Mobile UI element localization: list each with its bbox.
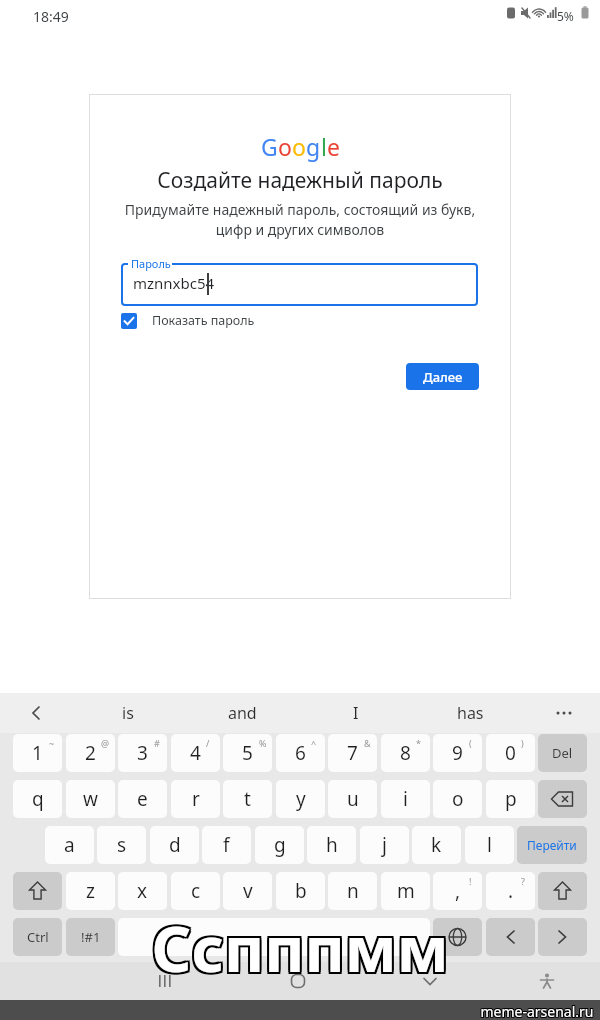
staticText: Сспппмм <box>2 904 600 988</box>
staticText: Создайте надежный пароль <box>89 166 511 195</box>
button[interactable]: 9 <box>433 734 482 772</box>
button[interactable]: , <box>433 872 482 910</box>
button[interactable]: v <box>223 872 272 910</box>
button[interactable]: 7 <box>328 734 377 772</box>
button[interactable]: 4 <box>171 734 220 772</box>
staticText: u <box>347 786 359 812</box>
button[interactable]: w <box>66 780 115 818</box>
button[interactable]: x <box>118 872 167 910</box>
button[interactable]: o <box>433 780 482 818</box>
button[interactable]: Accessibility <box>523 962 571 1000</box>
staticText: 18:49 <box>33 7 69 26</box>
staticText: 7 <box>347 740 358 766</box>
button[interactable]: t <box>223 780 272 818</box>
button[interactable]: 5 <box>223 734 272 772</box>
button[interactable]: Hide keyboard <box>406 962 454 1000</box>
button[interactable]: Previous <box>486 918 535 956</box>
staticText: I <box>353 702 359 724</box>
button[interactable]: c <box>171 872 220 910</box>
button[interactable]: s <box>97 826 146 864</box>
staticText: . <box>508 878 514 904</box>
staticText: Del <box>552 744 573 762</box>
staticText: t <box>244 786 251 812</box>
staticText: Сспппмм <box>0 906 598 990</box>
button[interactable]: I <box>306 695 406 731</box>
button[interactable]: 3 <box>118 734 167 772</box>
button[interactable]: r <box>171 780 220 818</box>
staticText: b <box>295 878 307 904</box>
button[interactable]: Recents <box>141 962 189 1000</box>
button[interactable]: d <box>150 826 199 864</box>
staticText: meme-arsenal.ru <box>477 1001 599 1020</box>
staticText: 5% <box>557 8 574 24</box>
button[interactable]: m <box>381 872 430 910</box>
button[interactable]: Next <box>538 918 587 956</box>
button[interactable]: More options <box>546 695 582 731</box>
staticText: meme-arsenal.ru <box>476 1002 598 1020</box>
button[interactable]: Change language <box>433 918 482 956</box>
button[interactable]: 8 <box>381 734 430 772</box>
button[interactable] <box>121 263 478 306</box>
button[interactable]: Back <box>18 695 54 731</box>
staticText: c <box>191 878 201 904</box>
staticText: e <box>327 131 340 162</box>
button[interactable]: Показать пароль <box>121 311 301 330</box>
button[interactable]: f <box>202 826 251 864</box>
button[interactable]: Ctrl <box>13 918 62 956</box>
button[interactable]: Del <box>538 734 587 772</box>
button[interactable]: b <box>276 872 325 910</box>
button[interactable]: Перейти <box>517 826 587 864</box>
staticText: l <box>487 832 492 858</box>
staticText: k <box>431 832 442 858</box>
button[interactable]: Backspace <box>538 780 587 818</box>
button[interactable]: 0 <box>486 734 535 772</box>
button[interactable]: j <box>360 826 409 864</box>
staticText: ( <box>469 737 472 749</box>
button[interactable]: z <box>66 872 115 910</box>
staticText: ) <box>521 737 524 749</box>
staticText: d <box>169 832 181 858</box>
staticText: m <box>397 878 415 904</box>
button[interactable]: has <box>420 695 520 731</box>
staticText: Сспппмм <box>0 906 600 990</box>
staticText: ^ <box>311 737 317 749</box>
staticText: e <box>137 786 148 812</box>
button[interactable]: and <box>192 695 292 731</box>
button[interactable]: !#1 <box>66 918 115 956</box>
button[interactable]: n <box>328 872 377 910</box>
button[interactable]: 6 <box>276 734 325 772</box>
button[interactable]: p <box>486 780 535 818</box>
button[interactable]: k <box>412 826 461 864</box>
button[interactable]: is <box>78 695 178 731</box>
staticText: s <box>117 832 127 858</box>
staticText: meme-arsenal.ru <box>476 1001 598 1020</box>
staticText: and <box>228 702 257 724</box>
staticText: f <box>223 832 230 858</box>
button[interactable]: 2 <box>66 734 115 772</box>
button[interactable]: Shift <box>13 872 62 910</box>
staticText: Пароль <box>131 256 171 271</box>
button[interactable]: a <box>45 826 94 864</box>
button[interactable]: h <box>307 826 356 864</box>
button[interactable]: . <box>486 872 535 910</box>
button[interactable]: i <box>381 780 430 818</box>
button[interactable]: 1 <box>13 734 62 772</box>
button[interactable]: q <box>13 780 62 818</box>
staticText: # <box>154 737 160 749</box>
button[interactable]: u <box>328 780 377 818</box>
button[interactable]: l <box>465 826 514 864</box>
button[interactable]: Shift <box>538 872 587 910</box>
staticText: Сспппмм <box>0 908 600 992</box>
staticText: G <box>261 131 278 162</box>
button[interactable]: Space <box>118 918 430 956</box>
button[interactable]: Далее <box>406 363 479 390</box>
button[interactable]: Home <box>274 962 322 1000</box>
staticText: g <box>274 832 286 858</box>
staticText: Придумайте надежный пароль, состоящий из… <box>110 200 490 239</box>
staticText: mznnxbc54 <box>133 273 215 293</box>
button[interactable]: e <box>118 780 167 818</box>
staticText: !#1 <box>81 928 101 946</box>
button[interactable]: g <box>255 826 304 864</box>
staticText: i <box>403 786 408 812</box>
button[interactable]: y <box>276 780 325 818</box>
